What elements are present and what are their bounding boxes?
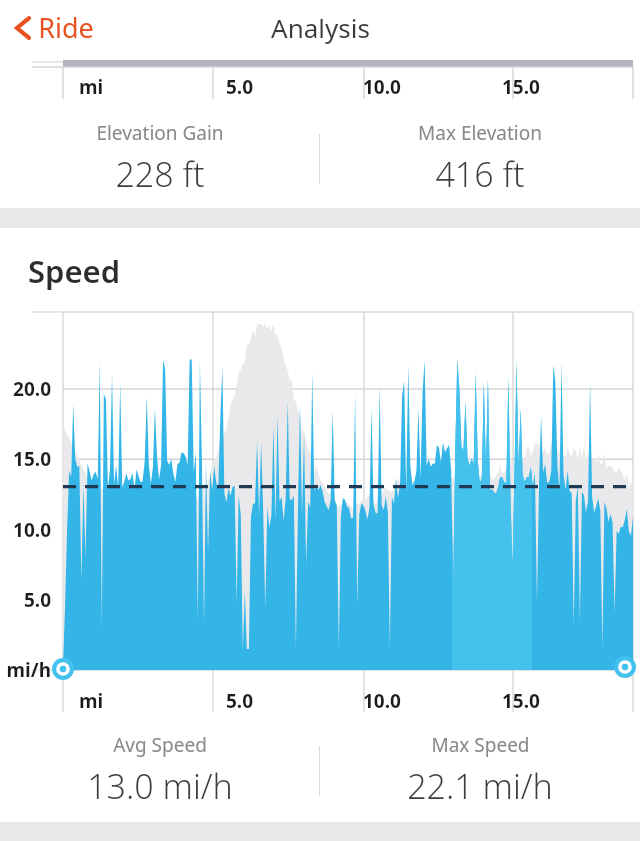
button[interactable]: Avg Speed — [0, 732, 319, 809]
staticText: Speed — [28, 250, 121, 292]
staticText: 15.0 — [0, 446, 51, 472]
staticText: Avg Speed — [113, 732, 207, 758]
staticText: 10.0 — [0, 517, 51, 543]
staticText: 15.0 — [502, 688, 540, 714]
staticText: 20.0 — [0, 376, 51, 402]
button[interactable]: Max Speed — [320, 732, 640, 809]
staticText: 10.0 — [363, 74, 401, 100]
staticText: 5.0 — [226, 74, 254, 100]
staticText: mi — [79, 688, 104, 714]
staticText: Ride — [38, 9, 94, 46]
staticText: 228 ft — [115, 151, 205, 197]
staticText: Analysis — [271, 10, 370, 45]
button[interactable]: Elevation Gain — [0, 120, 319, 197]
staticText: Max Speed — [431, 732, 530, 758]
staticText: mi/h — [0, 657, 51, 683]
staticText: 5.0 — [0, 587, 51, 613]
button[interactable]: Back — [13, 9, 94, 46]
other: Back — [13, 13, 33, 43]
staticText: 13.0 mi/h — [87, 763, 233, 809]
button[interactable]: Max Elevation — [320, 120, 640, 197]
staticText: 10.0 — [363, 688, 401, 714]
staticText: Elevation Gain — [96, 120, 224, 146]
staticText: 5.0 — [226, 688, 254, 714]
staticText: 22.1 mi/h — [407, 763, 553, 809]
staticText: mi — [79, 74, 104, 100]
staticText: 416 ft — [435, 151, 525, 197]
staticText: 15.0 — [502, 74, 540, 100]
staticText: Max Elevation — [418, 120, 542, 146]
